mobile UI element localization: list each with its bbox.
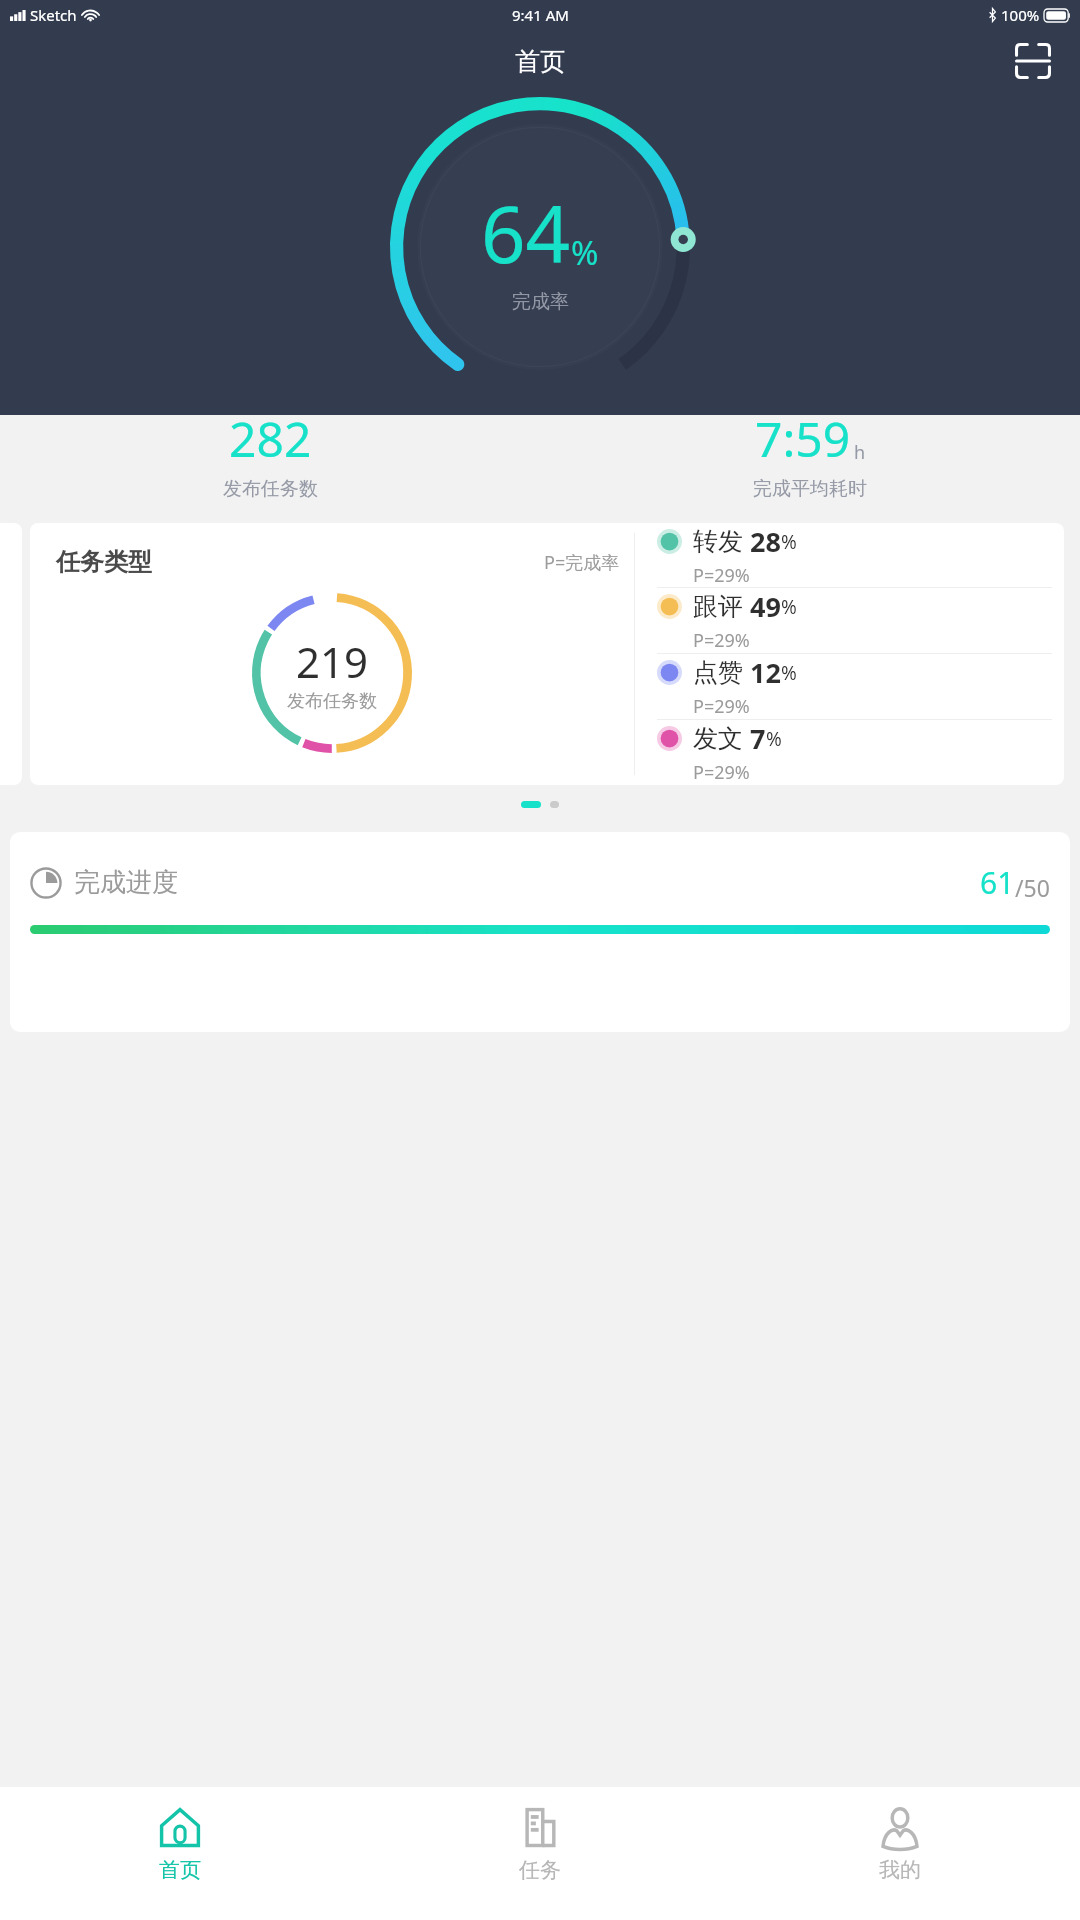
staticText: P=29%	[693, 628, 750, 653]
button[interactable]: 完成进度	[10, 832, 1070, 1032]
staticText: %	[781, 660, 797, 686]
staticText: %	[766, 726, 782, 752]
staticText: /50	[1015, 872, 1050, 903]
button[interactable]: 我的	[720, 1787, 1080, 1920]
button[interactable]: 扫一扫	[1010, 38, 1056, 84]
staticText: %	[781, 594, 797, 620]
staticText: 我的	[879, 1857, 921, 1883]
staticText: 28	[750, 523, 781, 560]
staticText: 完成平均耗时	[753, 477, 867, 501]
staticText: 12	[750, 654, 781, 691]
button[interactable]: 任务	[360, 1787, 720, 1920]
button[interactable]: 首页	[0, 1787, 360, 1920]
staticText: 完成率	[512, 290, 569, 314]
staticText: 跟评	[693, 591, 743, 622]
staticText: 100%	[1001, 5, 1040, 25]
staticText: 9:41 AM	[512, 5, 569, 25]
staticText: P=完成率	[544, 550, 620, 575]
button[interactable]: 任务类型	[30, 523, 1064, 785]
staticText: 7:59	[755, 406, 851, 471]
staticText: %	[571, 230, 599, 275]
staticText: 7	[750, 720, 766, 757]
staticText: 首页	[515, 46, 565, 77]
staticText: 282	[229, 406, 312, 471]
staticText: 219	[296, 633, 369, 690]
staticText: 任务	[519, 1857, 561, 1883]
staticText: 发布任务数	[287, 690, 377, 713]
staticText: 发文	[693, 723, 743, 754]
staticText: P=29%	[693, 760, 750, 785]
staticText: 发布任务数	[223, 477, 318, 501]
staticText: Sketch	[30, 5, 77, 25]
staticText: %	[781, 529, 797, 555]
staticText: 完成进度	[74, 866, 178, 899]
staticText: 61	[980, 862, 1015, 903]
staticText: 任务类型	[56, 547, 152, 577]
staticText: h	[854, 440, 866, 465]
staticText: 49	[750, 588, 781, 625]
staticText: 点赞	[693, 657, 743, 688]
staticText: P=29%	[693, 694, 750, 719]
staticText: 转发	[693, 526, 743, 557]
staticText: 64	[481, 180, 571, 286]
staticText: P=29%	[693, 563, 750, 587]
staticText: 首页	[159, 1857, 201, 1883]
